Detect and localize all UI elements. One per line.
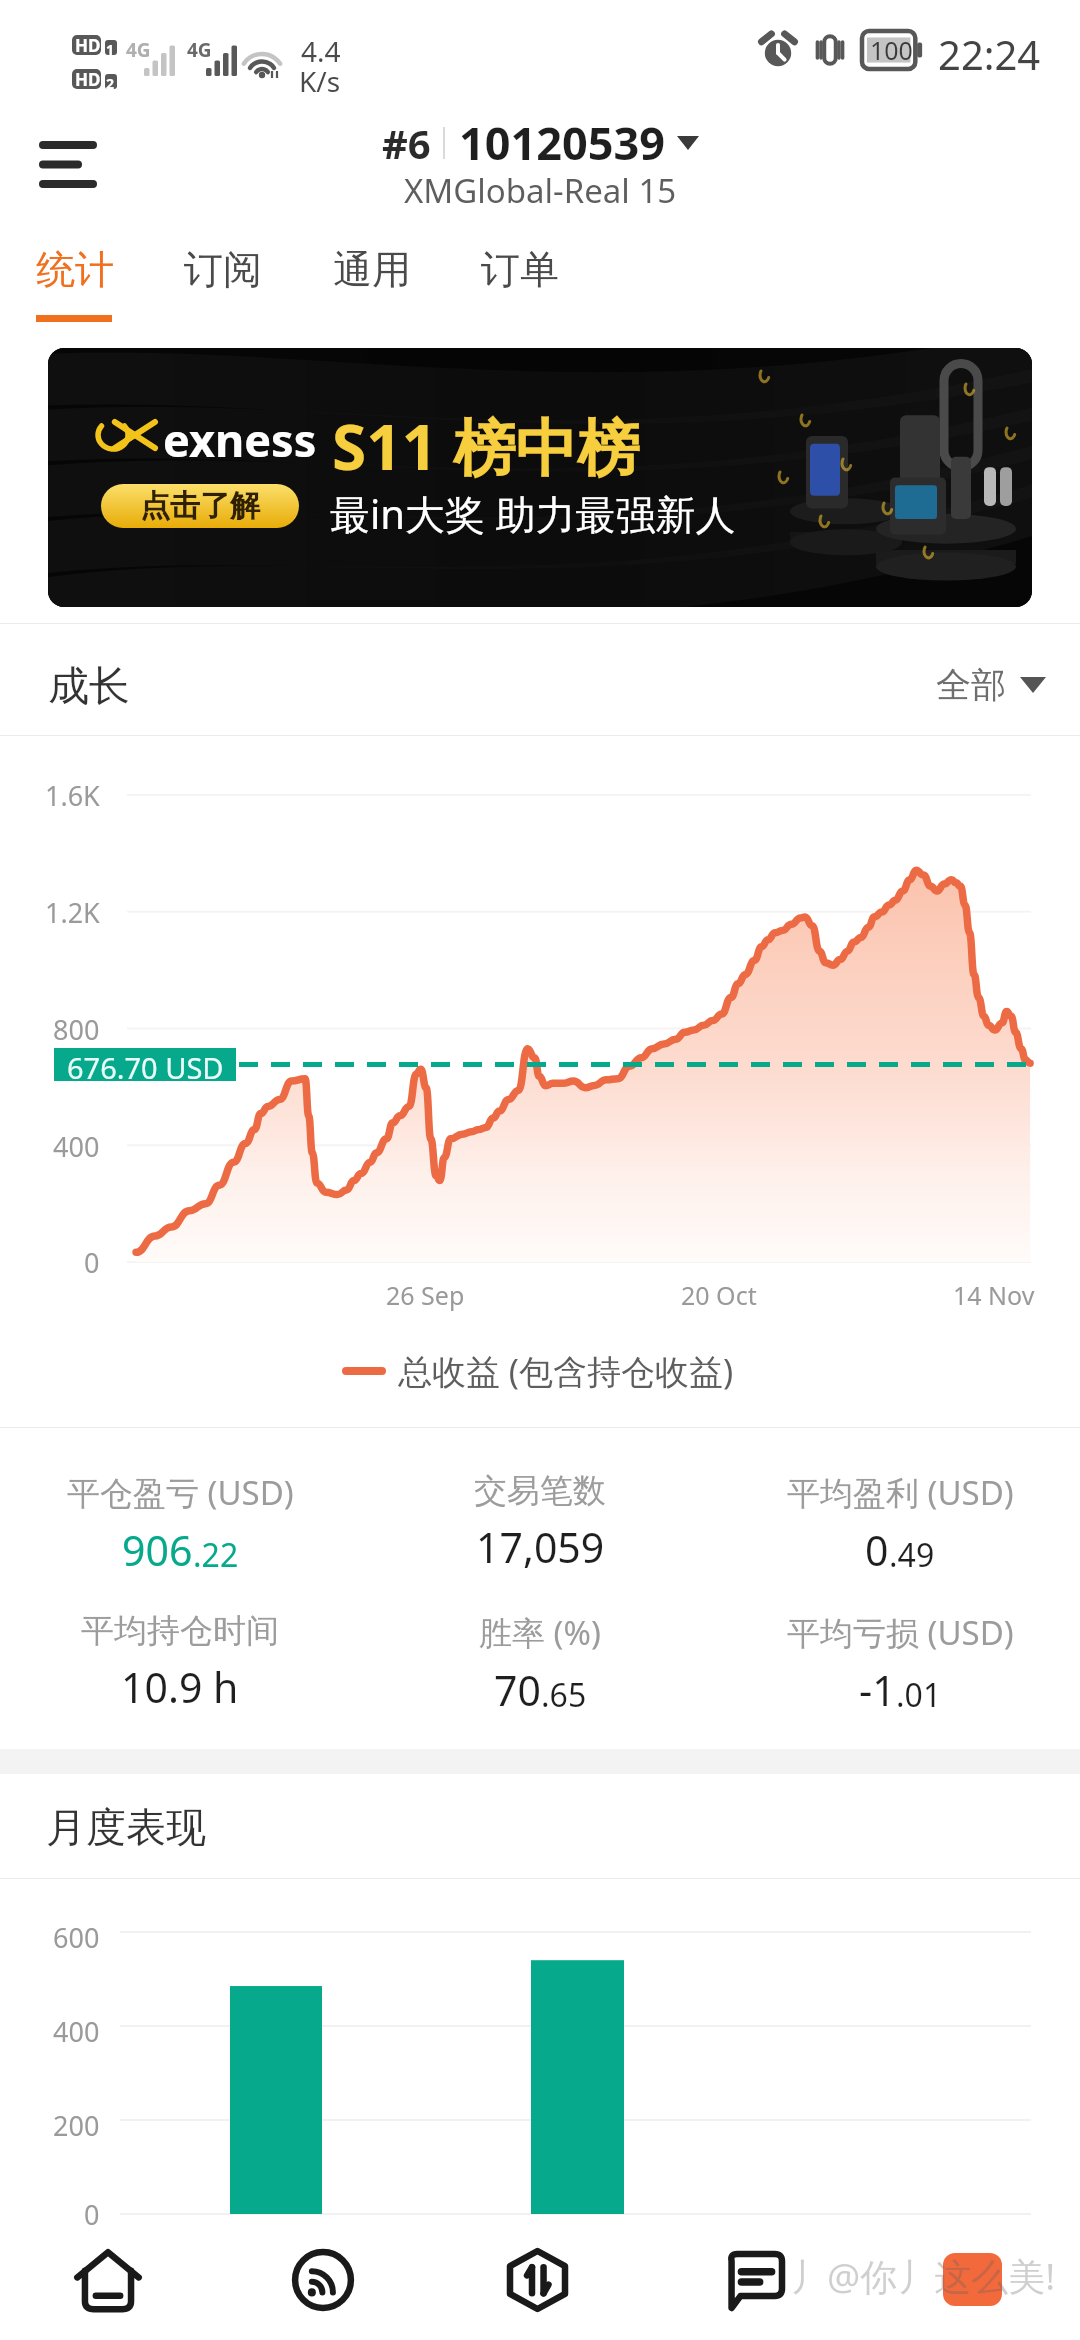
button[interactable]: Home	[1, 2232, 215, 2340]
staticText: 0	[84, 1244, 100, 1281]
button[interactable]: 通用	[307, 228, 435, 324]
staticText: 676.70 USD	[67, 1048, 224, 1081]
staticText: 平均持仓时间	[81, 1610, 279, 1652]
staticText: 最in大奖 助力最强新人	[330, 486, 736, 541]
staticText: HD	[75, 34, 101, 57]
staticText: 200	[53, 2107, 100, 2144]
staticText: HD	[75, 68, 101, 91]
staticText: 月度表现	[46, 1802, 206, 1852]
staticText: 22:24	[938, 27, 1041, 73]
staticText: .22	[193, 1533, 239, 1577]
staticText: K/s	[299, 62, 341, 100]
staticText: 平均亏损 (USD)	[787, 1610, 1014, 1655]
staticText: 4G	[126, 37, 151, 63]
staticText: 交易笔数	[474, 1470, 606, 1512]
staticText: 全部	[936, 663, 1006, 707]
staticText: 丿@你丿这么美!	[790, 2250, 1056, 2301]
button[interactable]: Trade	[430, 2232, 644, 2340]
staticText: 平仓盈亏 (USD)	[67, 1470, 294, 1515]
staticText: .65	[541, 1673, 587, 1717]
staticText: 17,059	[476, 1519, 605, 1575]
staticText: 0	[865, 1522, 889, 1578]
staticText: .49	[889, 1533, 935, 1577]
staticText: 14 Nov	[953, 1278, 1035, 1312]
staticText: 400	[53, 1128, 100, 1165]
staticText: 600	[53, 1919, 100, 1956]
staticText: 400	[53, 2013, 100, 2050]
staticText: 4.4	[301, 32, 341, 70]
staticText: 10.9 h	[121, 1659, 239, 1715]
button[interactable]: 全部	[936, 655, 1046, 715]
button[interactable]: #6	[0, 112, 1080, 218]
staticText: -1	[859, 1662, 896, 1718]
staticText: 订单	[481, 245, 559, 294]
button[interactable]: 订阅	[158, 228, 286, 324]
button[interactable]: Messages	[649, 2232, 863, 2340]
staticText: 70	[494, 1662, 541, 1718]
staticText: 胜率 (%)	[479, 1610, 601, 1655]
staticText: 4G	[187, 37, 212, 63]
button[interactable]: Signals	[216, 2232, 430, 2340]
staticText: 10120539	[459, 112, 665, 173]
staticText: S11 榜中榜	[332, 404, 640, 489]
staticText: #6	[382, 116, 431, 170]
staticText: 成长	[48, 661, 130, 713]
staticText: XMGlobal-Real 15	[404, 168, 677, 213]
staticText: 100	[870, 33, 913, 67]
staticText: .01	[896, 1673, 942, 1717]
staticText: 总收益 (包含持仓收益)	[398, 1348, 734, 1394]
staticText: 1	[106, 40, 115, 59]
staticText: 统计	[36, 245, 114, 294]
staticText: 20 Oct	[681, 1278, 757, 1312]
staticText: 1.6K	[45, 777, 100, 814]
staticText: 平均盈利 (USD)	[787, 1470, 1014, 1515]
staticText: exness	[163, 409, 317, 470]
staticText: 0	[84, 2196, 100, 2233]
staticText: 订阅	[184, 245, 262, 294]
staticText: 点击了解	[140, 487, 260, 525]
button[interactable]: Menu	[6, 118, 130, 210]
staticText: 1.2K	[45, 894, 100, 931]
button[interactable]: 订单	[455, 228, 583, 324]
staticText: 通用	[333, 245, 411, 294]
button[interactable]: Exness promotion banner	[48, 348, 1032, 607]
staticText: 800	[53, 1011, 100, 1048]
button[interactable]: 统计	[10, 228, 138, 324]
staticText: 2	[106, 74, 115, 93]
staticText: 26 Sep	[386, 1278, 465, 1312]
staticText: 906	[122, 1522, 193, 1578]
